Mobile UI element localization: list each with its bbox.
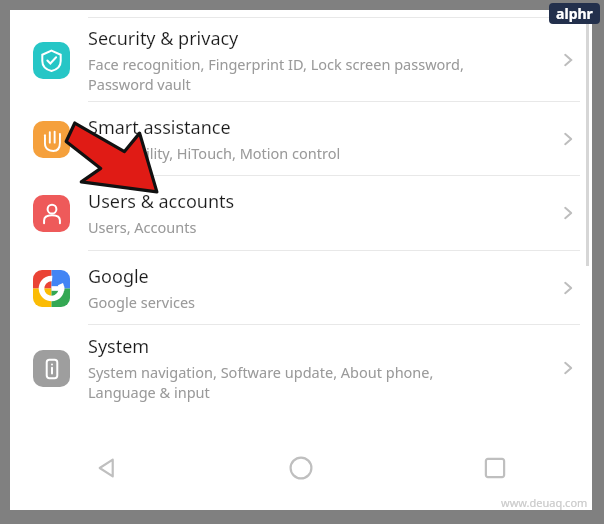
staticText: Google [88, 264, 149, 289]
button[interactable]: Smart assistance [10, 102, 592, 175]
staticText: Security & privacy [88, 26, 239, 51]
staticText: Face recognition, Fingerprint ID, Lock s… [88, 54, 464, 94]
button[interactable]: Home [204, 436, 398, 500]
button[interactable]: Recent apps [398, 436, 592, 500]
staticText: System [88, 334, 150, 359]
staticText: www.deuaq.com [501, 495, 588, 510]
button[interactable]: System [10, 325, 592, 411]
staticText: Smart assistance [88, 115, 231, 140]
staticText: Users, Accounts [88, 217, 197, 237]
staticText: Accessibility, HiTouch, Motion control [88, 143, 341, 163]
staticText: Google services [88, 292, 196, 312]
staticText: alphr [556, 4, 593, 23]
button[interactable]: Google [10, 251, 592, 324]
button[interactable]: Back [10, 436, 204, 500]
button[interactable]: Security & privacy [10, 18, 592, 101]
button[interactable]: Users & accounts [10, 176, 592, 250]
staticText: System navigation, Software update, Abou… [88, 362, 434, 402]
staticText: Users & accounts [88, 189, 235, 214]
